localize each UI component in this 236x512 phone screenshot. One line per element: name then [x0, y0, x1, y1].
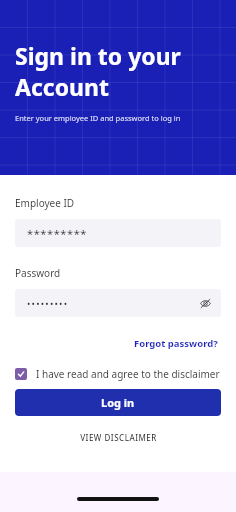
button[interactable]: •••••••••	[15, 289, 221, 317]
button[interactable]: Log in	[15, 389, 221, 416]
staticText: Enter your employee ID and password to l…	[15, 113, 181, 123]
staticText: Password	[15, 266, 61, 280]
staticText: *********	[27, 226, 87, 241]
button[interactable]: I have read and agree to the disclaimer	[15, 367, 221, 381]
staticText: Log in	[101, 395, 135, 410]
button[interactable]: VIEW DISCLAIMER	[76, 428, 161, 447]
staticText: Sign in to your	[15, 40, 181, 71]
button[interactable]: *********	[15, 219, 221, 247]
staticText: Account	[15, 71, 109, 102]
staticText: I have read and agree to the disclaimer	[36, 367, 220, 381]
staticText: VIEW DISCLAIMER	[80, 432, 157, 443]
staticText: Forgot password?	[134, 337, 218, 350]
staticText: •••••••••	[27, 297, 69, 309]
button[interactable]: Show password	[195, 293, 215, 313]
staticText: Employee ID	[15, 196, 75, 210]
button[interactable]: Forgot password?	[131, 334, 221, 353]
